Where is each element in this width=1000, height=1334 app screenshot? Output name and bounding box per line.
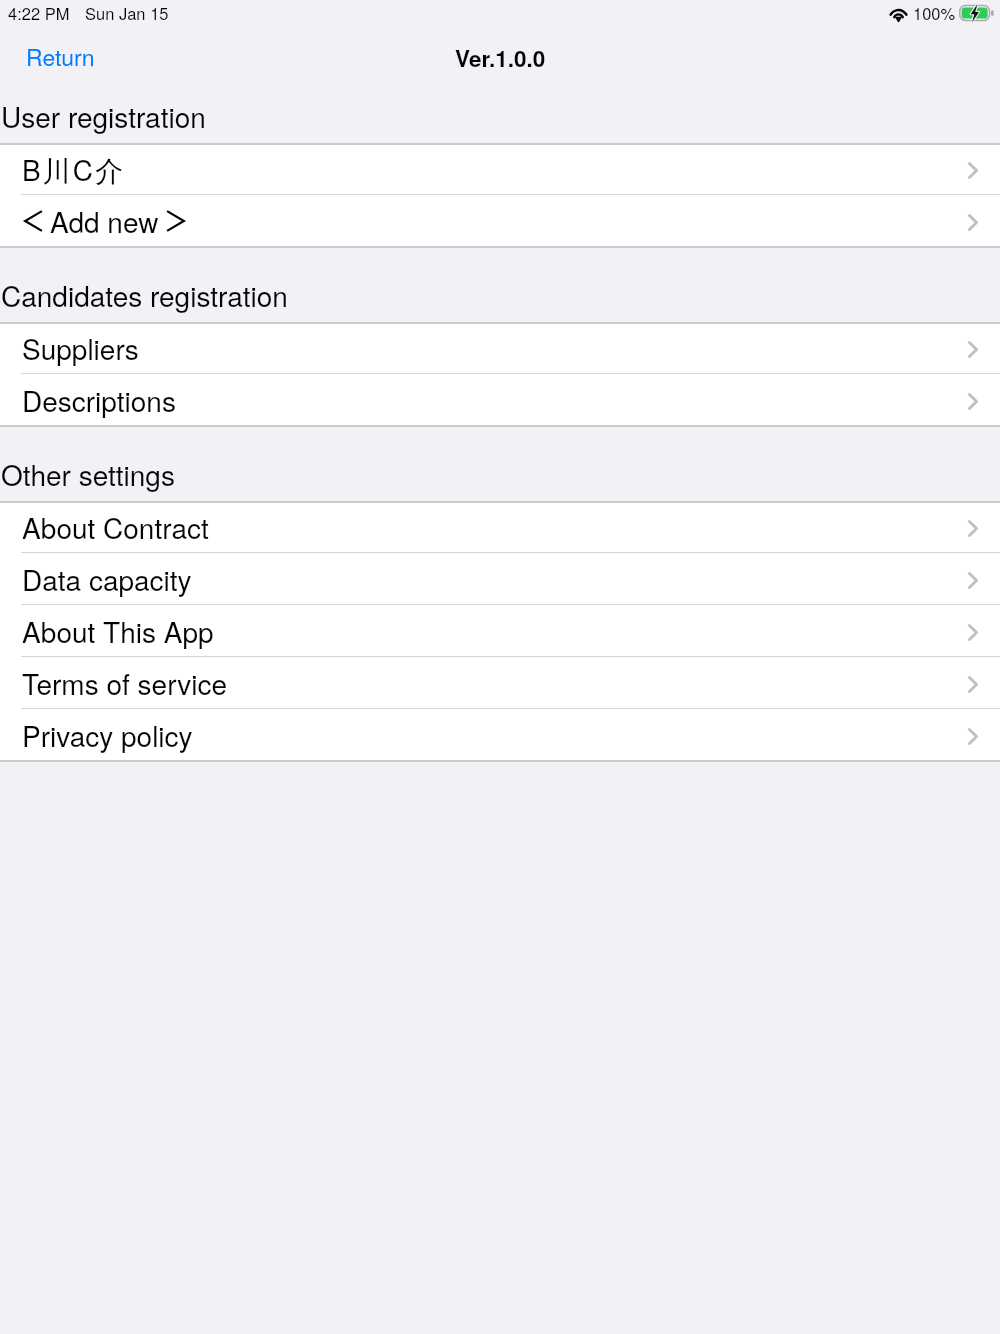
staticText: About This App xyxy=(22,611,214,651)
staticText: Sun Jan 15 xyxy=(85,1,169,25)
button[interactable]: Data capacity xyxy=(0,553,1000,605)
staticText: Ver.1.0.0 xyxy=(455,42,546,74)
button[interactable]: About This App xyxy=(0,605,1000,657)
staticText: Suppliers xyxy=(22,328,139,368)
staticText: Other settings xyxy=(1,454,175,494)
staticText: Return xyxy=(26,40,95,70)
staticText: About Contract xyxy=(22,507,209,547)
staticText: 100% xyxy=(913,1,956,25)
staticText: B川C介 xyxy=(22,149,125,189)
button[interactable]: B川C介 xyxy=(0,143,1000,195)
button[interactable]: Return xyxy=(0,35,115,75)
button[interactable]: About Contract xyxy=(0,501,1000,553)
button[interactable]: Terms of service xyxy=(0,657,1000,709)
button[interactable]: Privacy policy xyxy=(0,709,1000,761)
staticText: Privacy policy xyxy=(22,715,193,755)
staticText: Terms of service xyxy=(22,663,228,703)
staticText: Descriptions xyxy=(22,380,176,420)
staticText: Data capacity xyxy=(22,559,192,599)
staticText: Add new xyxy=(50,201,159,241)
staticText: Candidates registration xyxy=(1,275,288,315)
button[interactable]: Descriptions xyxy=(0,374,1000,426)
other: Battery charging, 100 percent xyxy=(959,4,995,22)
button[interactable]: Add new xyxy=(0,195,1000,247)
staticText: User registration xyxy=(1,96,206,136)
other: Wi-Fi connected xyxy=(889,4,908,23)
button[interactable]: Suppliers xyxy=(0,322,1000,374)
staticText: 4:22 PM xyxy=(8,1,70,25)
